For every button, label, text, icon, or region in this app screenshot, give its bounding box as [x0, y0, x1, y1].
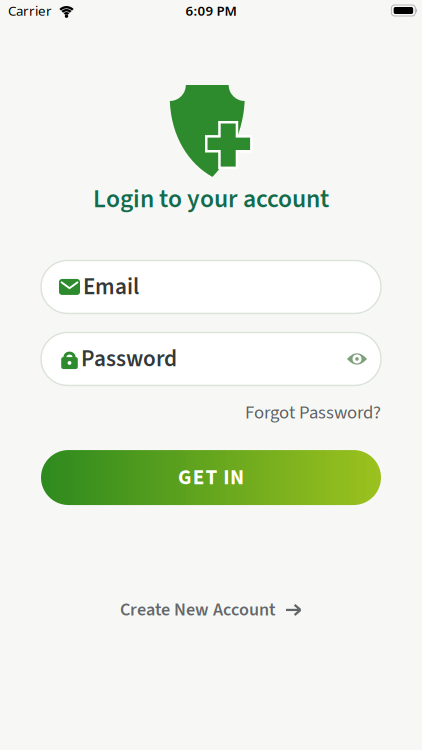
staticText: Password	[81, 342, 177, 375]
button[interactable]: Forgot Password?	[245, 399, 381, 426]
staticText: Email	[83, 270, 139, 303]
staticText: 6:09 PM	[185, 2, 236, 19]
button[interactable]: GET IN	[41, 450, 381, 505]
staticText: Login to your account	[93, 181, 329, 217]
staticText: Forgot Password?	[245, 399, 381, 426]
button[interactable]: Email	[41, 260, 381, 313]
staticText: GET IN	[178, 462, 244, 493]
button[interactable]: Show password	[347, 352, 367, 365]
button[interactable]: Create New Account	[120, 597, 302, 623]
button[interactable]: Password	[41, 332, 381, 385]
staticText: Carrier	[8, 2, 52, 19]
staticText: Create New Account	[120, 597, 276, 623]
